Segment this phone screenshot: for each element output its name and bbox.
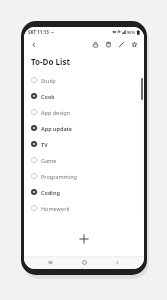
button[interactable]: Back <box>28 39 39 50</box>
button[interactable]: Favorite <box>129 39 140 50</box>
button[interactable]: App update <box>31 120 141 136</box>
button[interactable]: Study <box>31 72 141 88</box>
staticText: SKT 11:13 <box>28 29 49 35</box>
staticText: Cook <box>41 93 55 100</box>
staticText: Programming <box>41 173 77 180</box>
staticText: To-Do List <box>31 56 70 67</box>
staticText: TV <box>41 141 48 148</box>
button[interactable]: Delete <box>103 39 114 50</box>
button[interactable]: Lock <box>90 39 101 50</box>
button[interactable]: Home <box>78 256 91 269</box>
button[interactable]: Edit <box>116 39 127 50</box>
button[interactable]: Homework <box>31 200 141 216</box>
staticText: Study <box>41 77 56 84</box>
staticText: Homework <box>41 205 70 212</box>
staticText: App design <box>41 109 71 116</box>
button[interactable]: Cook <box>31 88 141 104</box>
button[interactable]: Game <box>31 152 141 168</box>
staticText: Game <box>41 157 57 164</box>
button[interactable]: Back <box>111 256 124 269</box>
staticText: Coding <box>41 189 60 196</box>
button[interactable]: Coding <box>31 184 141 200</box>
button[interactable]: App design <box>31 104 141 120</box>
button[interactable]: Add task <box>75 230 93 248</box>
button[interactable]: TV <box>31 136 141 152</box>
staticText: App update <box>41 125 73 132</box>
button[interactable]: Programming <box>31 168 141 184</box>
staticText: 95% <box>127 30 136 35</box>
button[interactable]: Recent apps <box>44 256 57 269</box>
